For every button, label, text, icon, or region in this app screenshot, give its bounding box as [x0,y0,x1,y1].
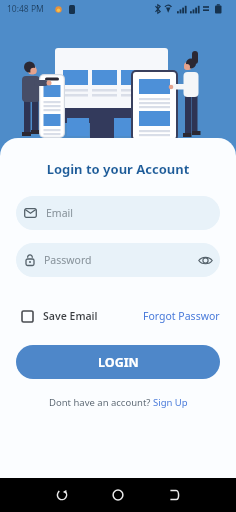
staticText: Sign Up [153,396,188,409]
staticText: Password [44,253,92,267]
staticText: 10:48 PM [7,3,44,15]
button[interactable] [146,478,202,512]
button[interactable]: Email [16,196,220,230]
staticText: Email [46,206,73,220]
button[interactable]: Password [16,243,220,277]
button[interactable]: LOGIN [16,345,220,379]
button[interactable]: Sign Up [153,396,188,409]
button[interactable]: Save Email [21,309,98,323]
staticText: Login to your Account [16,160,220,178]
staticText: Forgot Passwor [143,309,220,323]
staticText: Save Email [43,309,98,323]
button[interactable]: Forgot Passwor [143,309,220,323]
button[interactable] [90,478,146,512]
staticText: LOGIN [98,354,139,371]
staticText: Dont have an account? [49,396,153,409]
button[interactable] [34,478,90,512]
